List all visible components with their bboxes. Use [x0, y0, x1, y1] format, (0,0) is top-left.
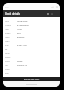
- staticText: Form: [5, 52, 10, 55]
- staticText: State: [5, 68, 10, 71]
- staticText: Loc: [5, 64, 9, 67]
- staticText: Title: [5, 20, 9, 23]
- staticText: English: [17, 36, 25, 39]
- staticText: Lang: [5, 36, 10, 39]
- staticText: 1979: [17, 28, 22, 31]
- staticText: Genre: [5, 56, 11, 59]
- button[interactable]: Pages: [3, 31, 60, 35]
- staticText: Good: [17, 60, 23, 63]
- button[interactable]: Borrow this book: [3, 77, 60, 81]
- button[interactable]: Search: [46, 12, 50, 16]
- staticText: Ed.: [5, 48, 8, 51]
- button[interactable]: ISBN: [3, 39, 60, 43]
- staticText: Book details: [5, 12, 20, 16]
- button[interactable]: Due: [3, 71, 60, 75]
- button[interactable]: Year: [3, 27, 60, 31]
- button[interactable]: Lang: [3, 35, 60, 39]
- staticText: 9:41: [5, 6, 9, 8]
- button[interactable]: State: [3, 67, 60, 71]
- staticText: 0-451-196: [17, 44, 27, 47]
- staticText: Author: [5, 24, 12, 27]
- staticText: Pub: [5, 44, 9, 47]
- button[interactable]: Form: [3, 51, 60, 55]
- staticText: Due: [5, 72, 9, 75]
- staticText: Cond: [5, 60, 10, 63]
- button[interactable]: Author: [3, 23, 60, 27]
- button[interactable]: Cond: [3, 59, 60, 63]
- staticText: 384: [17, 32, 21, 35]
- staticText: ISBN: [5, 40, 10, 43]
- button[interactable]: Pub: [3, 43, 60, 47]
- staticText: Borrow this book: [24, 78, 40, 81]
- button[interactable]: Ed.: [3, 47, 60, 51]
- button[interactable]: More options: [50, 12, 54, 16]
- staticText: R. Bachman: [17, 24, 29, 27]
- staticText: Pages: [5, 32, 11, 35]
- staticText: Shelf B-12: [17, 64, 27, 67]
- staticText: Year: [5, 28, 9, 31]
- button[interactable]: Title: [3, 19, 60, 23]
- button[interactable]: Genre: [3, 55, 60, 59]
- staticText: Long Walk: [17, 20, 28, 23]
- button[interactable]: Loc: [3, 63, 60, 67]
